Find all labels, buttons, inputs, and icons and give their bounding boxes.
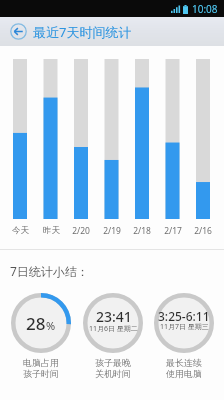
staticText: 7日统计小结： [10, 263, 89, 279]
button[interactable]: 28 [5, 293, 77, 379]
button[interactable]: Back [6, 19, 31, 44]
staticText: 2/20 [72, 225, 90, 237]
staticText: 28 [26, 312, 46, 335]
staticText: 3:25-6:11 [158, 308, 210, 324]
staticText: 电脑占用 [23, 357, 59, 368]
staticText: 2/16 [194, 225, 212, 237]
staticText: 关机时间 [95, 368, 131, 379]
staticText: 使用电脑 [166, 368, 202, 379]
button[interactable]: 23:41 [77, 293, 148, 379]
staticText: 2/18 [133, 225, 151, 237]
staticText: 最近7天时间统计 [33, 23, 132, 41]
staticText: 11月6日 星期二 [89, 324, 138, 334]
staticText: 11月7日 星期三 [160, 322, 209, 332]
staticText: 2/19 [103, 225, 121, 237]
staticText: 10:08 [192, 2, 218, 16]
button[interactable]: 3:25-6:11 [148, 293, 219, 379]
staticText: 今天 [12, 225, 29, 236]
staticText: 昨天 [43, 225, 60, 236]
staticText: 2/17 [164, 225, 182, 237]
staticText: 孩子最晚 [95, 357, 131, 368]
staticText: 最长连续 [166, 357, 202, 368]
staticText: % [46, 318, 56, 333]
staticText: 孩子时间 [23, 368, 59, 379]
staticText: 23:41 [96, 307, 132, 326]
